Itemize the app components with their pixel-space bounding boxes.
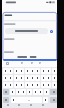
button[interactable] — [8, 68, 13, 74]
button[interactable] — [46, 68, 51, 74]
button[interactable] — [6, 62, 9, 65]
button[interactable] — [16, 97, 42, 103]
button[interactable] — [35, 82, 40, 88]
button[interactable] — [41, 68, 46, 74]
button[interactable] — [31, 62, 33, 64]
button[interactable] — [11, 97, 16, 103]
button[interactable] — [21, 62, 23, 64]
button[interactable] — [3, 97, 9, 103]
button[interactable] — [3, 82, 8, 88]
button[interactable] — [21, 89, 26, 95]
button[interactable] — [50, 97, 57, 103]
button[interactable] — [25, 75, 30, 81]
button[interactable] — [25, 68, 30, 74]
button[interactable] — [16, 89, 21, 95]
button[interactable] — [3, 68, 8, 74]
button[interactable] — [14, 75, 19, 81]
button[interactable] — [19, 68, 24, 74]
button[interactable] — [46, 82, 51, 88]
button[interactable] — [19, 75, 24, 81]
button[interactable] — [52, 68, 57, 74]
button[interactable] — [14, 82, 19, 88]
button[interactable] — [44, 89, 49, 95]
button[interactable] — [46, 75, 51, 81]
button[interactable] — [14, 68, 19, 74]
button[interactable] — [30, 82, 35, 88]
button[interactable] — [50, 89, 57, 95]
button[interactable] — [27, 89, 32, 95]
button[interactable] — [39, 62, 41, 64]
button[interactable] — [10, 89, 15, 95]
button[interactable] — [3, 59, 57, 61]
button[interactable] — [3, 89, 9, 95]
button[interactable] — [25, 82, 30, 88]
button[interactable] — [33, 89, 38, 95]
button[interactable] — [38, 89, 43, 95]
button[interactable] — [8, 82, 13, 88]
button[interactable] — [30, 68, 35, 74]
button[interactable] — [52, 82, 57, 88]
button[interactable] — [5, 28, 48, 34]
button[interactable] — [35, 75, 40, 81]
button[interactable] — [41, 75, 46, 81]
button[interactable] — [30, 75, 35, 81]
button[interactable] — [41, 82, 46, 88]
button[interactable] — [8, 75, 13, 81]
button[interactable] — [3, 75, 8, 81]
button[interactable] — [43, 97, 48, 103]
button[interactable] — [35, 68, 40, 74]
button[interactable] — [50, 30, 53, 33]
button[interactable] — [52, 75, 57, 81]
button[interactable] — [19, 82, 24, 88]
